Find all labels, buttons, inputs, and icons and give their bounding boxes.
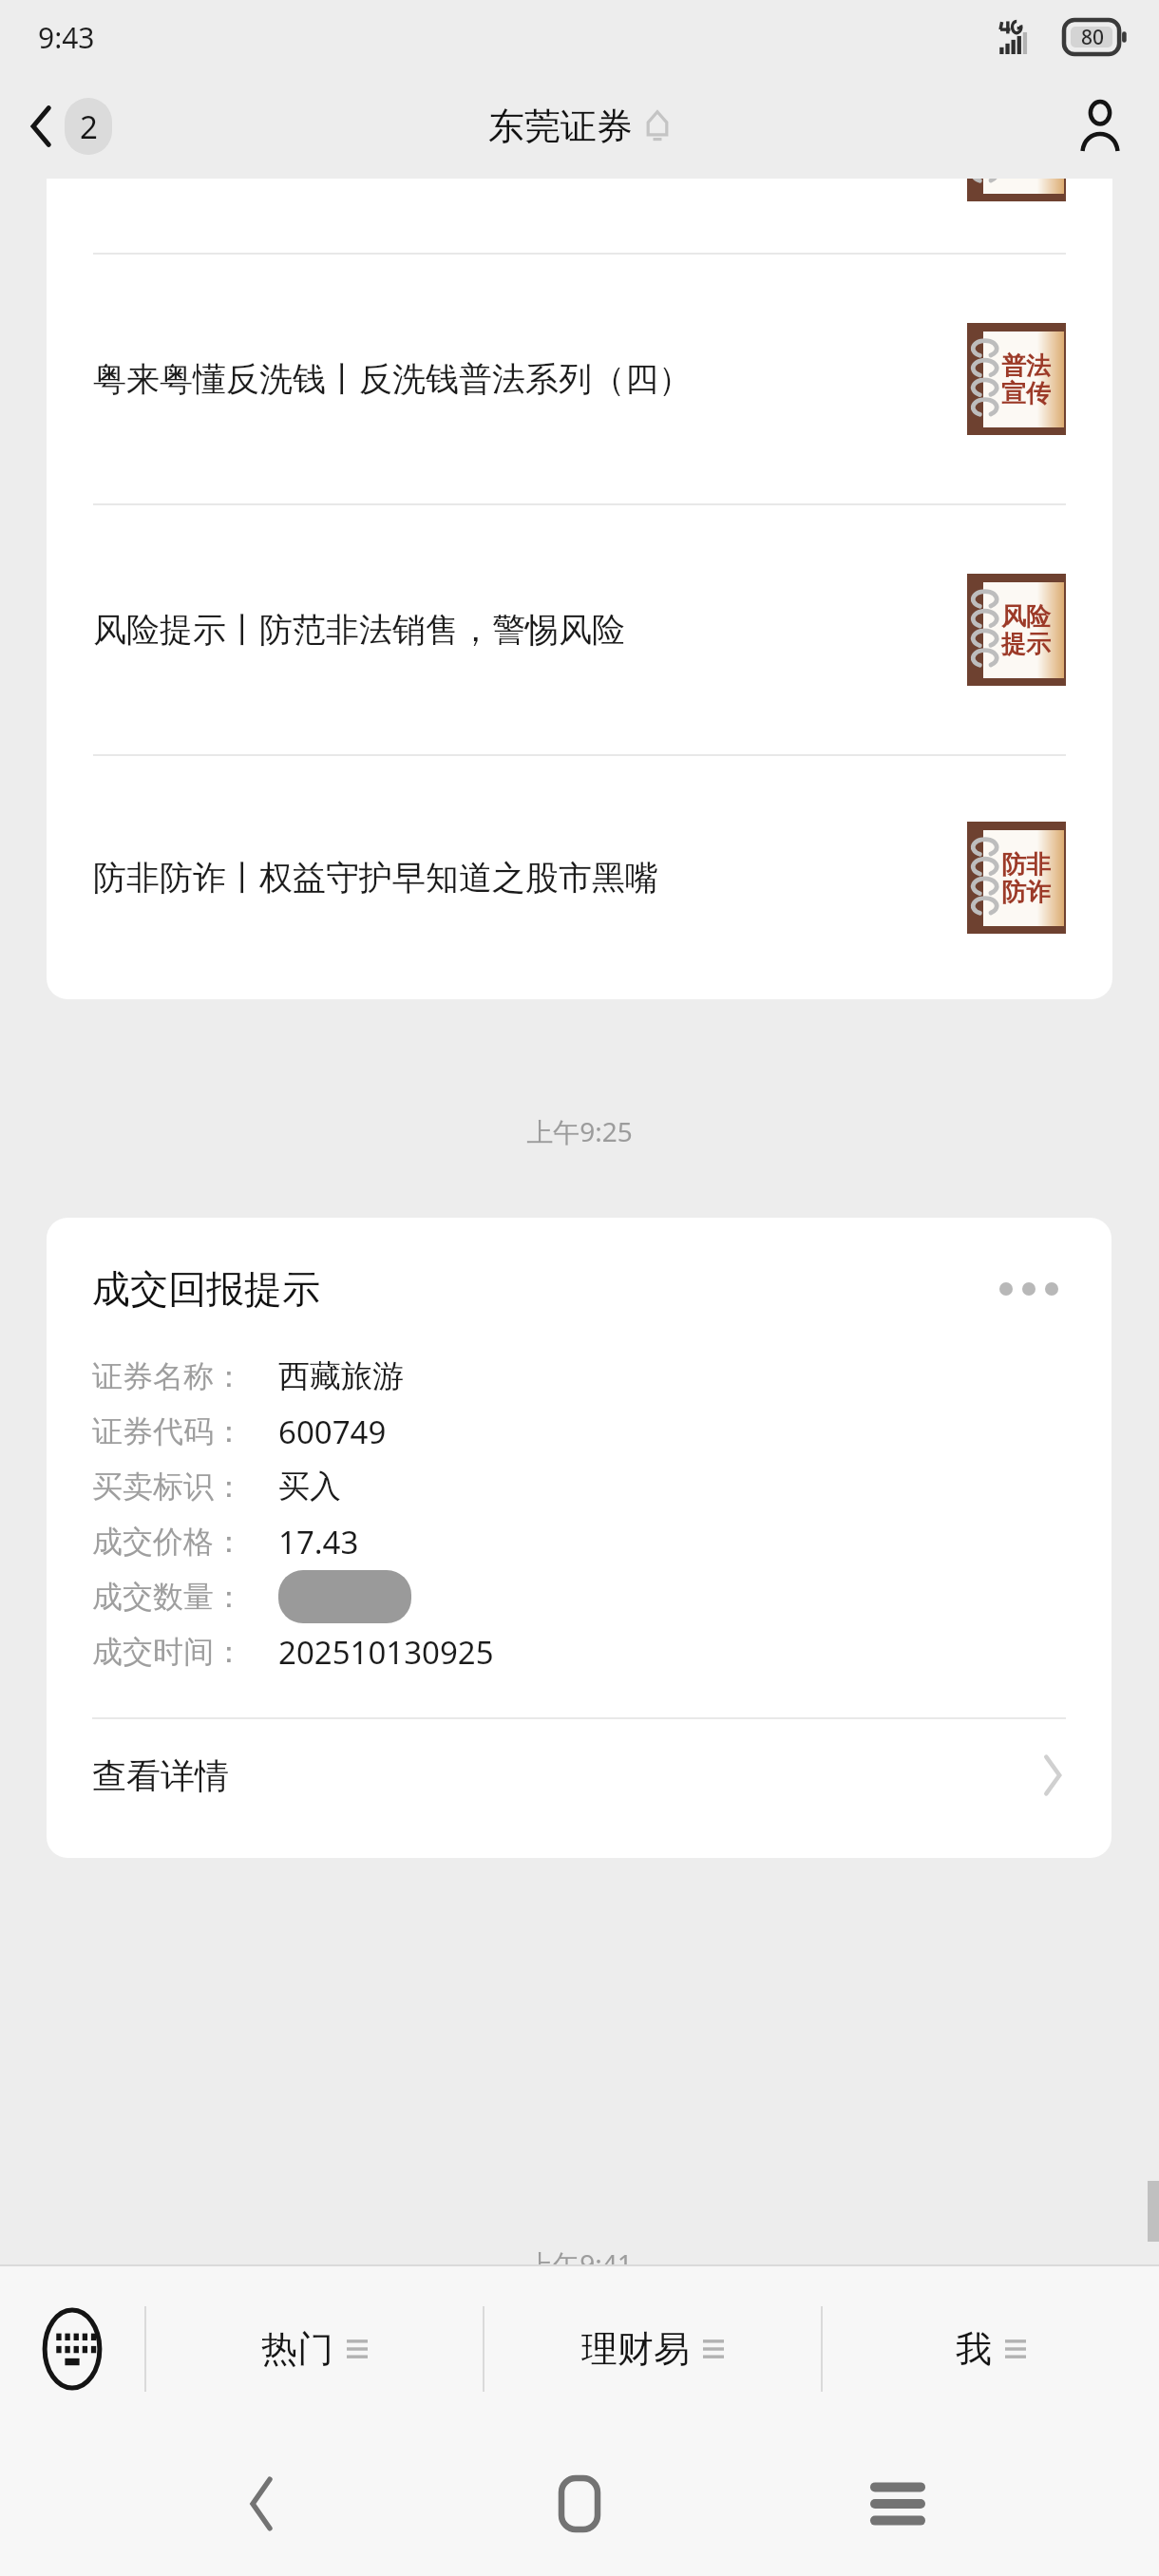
button[interactable]: 防非防诈丨权益守护早知道之股市黑嘴 <box>47 756 1112 999</box>
staticText: 查看详情 <box>92 1754 229 1797</box>
button[interactable]: Profile <box>1070 92 1130 161</box>
staticText: 我 <box>956 2326 992 2372</box>
staticText: 理财易 <box>581 2326 690 2372</box>
staticText: 风险 提示 <box>1001 601 1051 659</box>
staticText: 成交时间： <box>92 1633 278 1671</box>
staticText: 东莞证券 <box>488 104 633 149</box>
staticText: 证券名称： <box>92 1357 278 1395</box>
staticText: 防非 防诈 <box>1001 849 1051 907</box>
button[interactable]: 粤来粤懂反洗钱丨反洗钱普法系列（四） <box>47 255 1112 503</box>
button[interactable]: 查看详情 <box>47 1719 1111 1831</box>
staticText: 上午9:41 <box>0 2245 1159 2282</box>
button[interactable]: More options <box>988 1271 1070 1307</box>
button[interactable]: Recent apps <box>841 2447 955 2561</box>
button[interactable]: Home <box>522 2447 636 2561</box>
staticText: 17.43 <box>278 1521 359 1563</box>
staticText: 粤来粤懂反洗钱丨反洗钱普法系列（四） <box>93 358 946 400</box>
button[interactable]: 风险提示丨防范非法销售，警惕风险 <box>47 505 1112 754</box>
staticText: 2 <box>80 105 98 148</box>
button[interactable]: Back, 2 unread <box>23 92 118 161</box>
staticText: 西藏旅游 <box>278 1356 404 1396</box>
button[interactable]: 我 <box>823 2266 1159 2432</box>
staticText: 成交价格： <box>92 1523 278 1561</box>
staticText: 证券代码： <box>92 1412 278 1450</box>
button[interactable]: Back <box>204 2447 318 2561</box>
staticText: 成交数量： <box>92 1578 278 1616</box>
staticText: 80 <box>1081 24 1105 51</box>
staticText: 202510130925 <box>278 1631 494 1674</box>
button[interactable]: 理财易 <box>484 2266 821 2432</box>
staticText: 买卖标识： <box>92 1468 278 1506</box>
staticText: 9:43 <box>38 18 95 57</box>
button[interactable]: 热门点评丨政策东风助推人工智能板块 <box>47 38 1112 253</box>
staticText: 热门点评丨政策东风助推人工智能板块 <box>93 124 946 166</box>
staticText: 普法 宣传 <box>1001 350 1051 408</box>
staticText: 热门 <box>261 2326 333 2372</box>
staticText: 风险提示丨防范非法销售，警惕风险 <box>93 609 946 651</box>
staticText: 上午9:25 <box>0 1113 1159 1149</box>
staticText: 600749 <box>278 1411 387 1453</box>
button[interactable]: Keyboard <box>0 2266 144 2432</box>
button[interactable]: 热门 <box>146 2266 483 2432</box>
staticText: 防非防诈丨权益守护早知道之股市黑嘴 <box>93 857 946 899</box>
staticText: 成交回报提示 <box>92 1265 320 1313</box>
staticText: 买入 <box>278 1467 341 1506</box>
